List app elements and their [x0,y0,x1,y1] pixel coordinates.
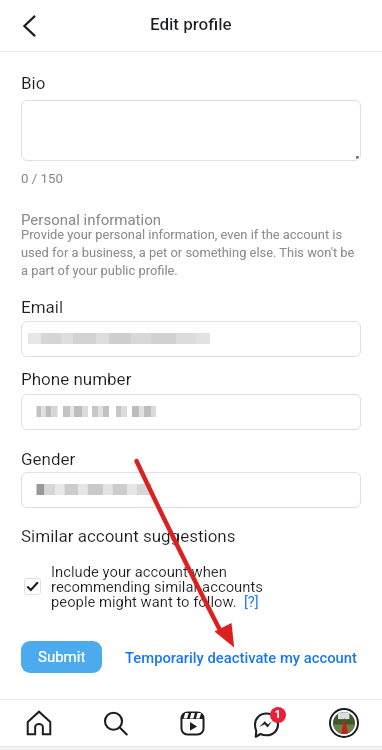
button[interactable]: Submit [21,641,102,673]
staticText: Personal information [21,211,162,229]
staticText: Provide your personal information, even … [21,227,361,278]
staticText: Similar account suggestions [21,526,236,546]
button[interactable]: Include account in similar suggestions [24,578,41,595]
button[interactable]: Back [9,5,51,47]
staticText: Bio [21,73,46,93]
staticText: Submit [38,648,86,666]
staticText: Edit profile [150,14,232,34]
staticText: 1 [275,709,281,721]
button[interactable]: Home [0,700,77,746]
button[interactable]: Profile [306,700,382,746]
button[interactable]: Reels [154,700,230,746]
staticText: Gender [21,449,76,469]
button[interactable]: Temporarily deactivate my account [125,645,357,670]
staticText: Phone number [21,369,132,389]
staticText: Email [21,297,64,317]
staticText: Include your account when recommending s… [51,563,277,610]
staticText: Temporarily deactivate my account [125,649,357,666]
button[interactable]: Search [77,700,154,746]
button[interactable]: Messenger [230,700,306,746]
staticText: 0 / 150 [21,171,63,187]
